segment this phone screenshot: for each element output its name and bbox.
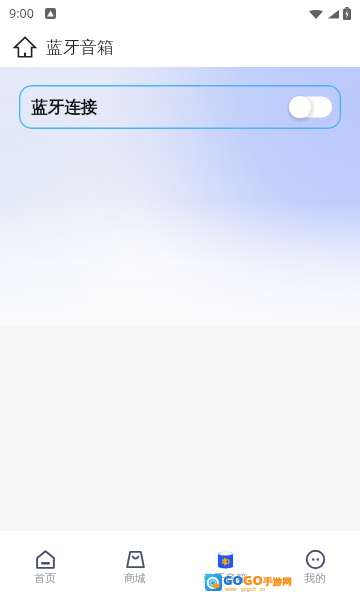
button[interactable]: 商城 <box>90 531 180 600</box>
button[interactable]: 首页 <box>0 531 90 600</box>
staticText: 商城 <box>124 571 146 585</box>
staticText: 蓝牙音箱 <box>46 37 114 58</box>
staticText: 手游网 <box>263 576 292 588</box>
button[interactable]: 我的 <box>270 531 360 600</box>
staticText: 蓝牙连接 <box>31 97 97 118</box>
button[interactable]: 蓝牙连接 <box>19 85 341 129</box>
staticText: 蓝牙音箱 <box>203 571 247 585</box>
staticText: GO <box>223 571 243 589</box>
staticText: 9:00 <box>9 5 34 22</box>
button[interactable]: 蓝牙音箱 <box>180 531 270 600</box>
staticText: 首页 <box>34 571 56 585</box>
button[interactable]: Home <box>14 36 36 58</box>
staticText: 我的 <box>304 571 326 585</box>
staticText: www . gogo5 . cn <box>225 586 266 593</box>
staticText: GO <box>243 571 263 589</box>
button[interactable]: Bluetooth toggle <box>289 96 332 118</box>
